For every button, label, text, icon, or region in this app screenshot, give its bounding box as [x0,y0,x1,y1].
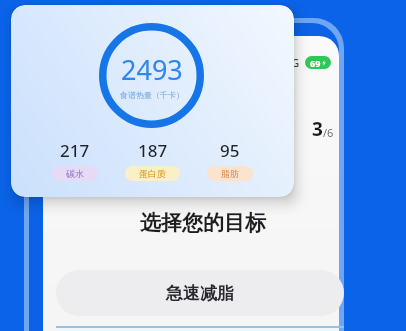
staticText: /6 [323,125,334,140]
staticText: 急速减脂 [166,283,234,304]
staticText: 3 [312,116,323,142]
staticText: 蛋白质 [139,168,166,179]
staticText: 217 [60,139,90,162]
staticText: 95 [220,139,240,162]
button[interactable]: 2493 [11,5,294,197]
staticText: 2493 [121,51,183,88]
staticText: 5G [285,55,300,70]
staticText: 食谱热量（千卡） [120,90,184,100]
button[interactable] [56,326,344,331]
button[interactable]: 急速减脂 [56,270,344,316]
staticText: 69 [310,57,321,69]
staticText: 187 [138,139,168,162]
staticText: 脂肪 [221,168,239,179]
staticText: 碳水 [66,168,84,179]
staticText: 选择您的目标 [140,210,266,236]
